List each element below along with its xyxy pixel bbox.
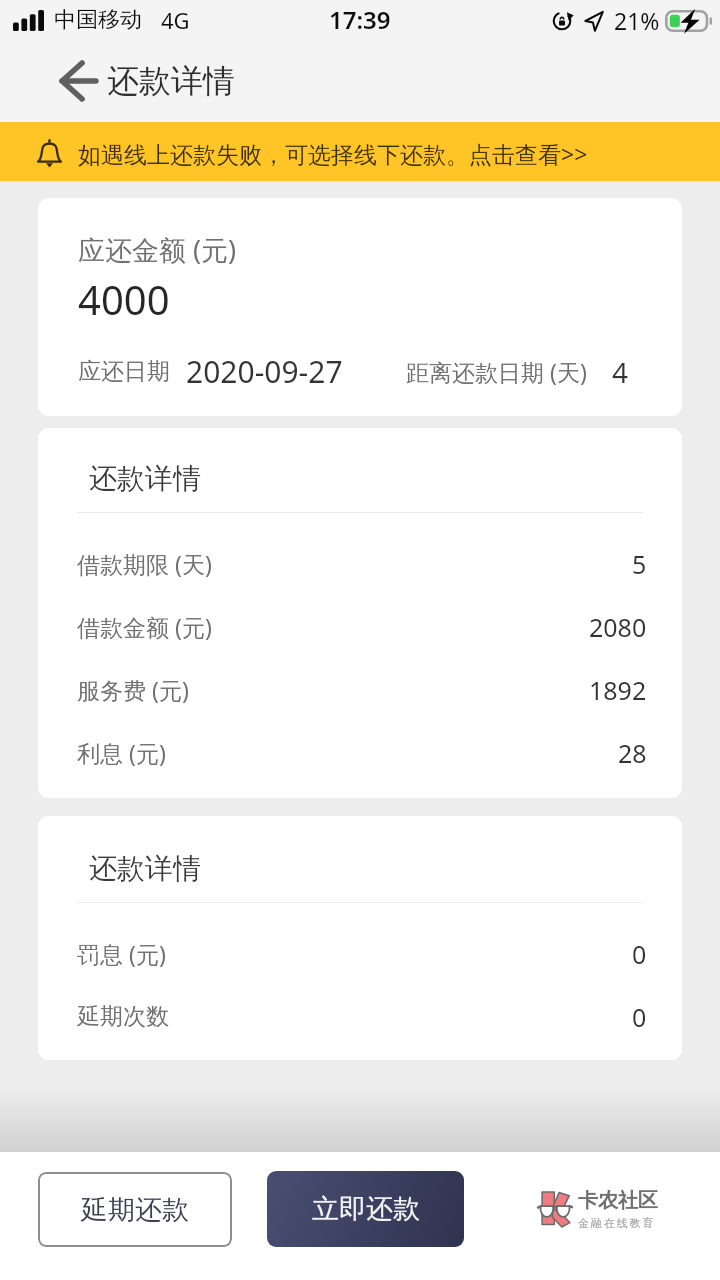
staticText: 如遇线上还款失败，可选择线下还款。点击查看>> bbox=[78, 138, 588, 169]
button[interactable]: 立即还款 bbox=[267, 1171, 464, 1247]
staticText: 延期还款 bbox=[81, 1193, 189, 1227]
staticText: 服务费 (元) bbox=[77, 674, 189, 705]
staticText: 0 bbox=[632, 937, 647, 971]
staticText: 4000 bbox=[78, 272, 170, 326]
staticText: 还款详情 bbox=[89, 461, 201, 496]
staticText: 借款金额 (元) bbox=[77, 611, 212, 642]
button[interactable]: 服务费 (元) bbox=[77, 658, 647, 721]
staticText: 罚息 (元) bbox=[77, 938, 166, 969]
staticText: 中国移动 bbox=[54, 6, 142, 34]
staticText: 距离还款日期 (天) bbox=[406, 356, 587, 387]
staticText: 应还日期 bbox=[78, 357, 170, 386]
button[interactable]: Back bbox=[56, 56, 101, 106]
staticText: 2020-09-27 bbox=[186, 351, 343, 392]
staticText: 延期次数 bbox=[77, 1002, 169, 1031]
staticText: 5 bbox=[632, 547, 647, 581]
staticText: 还款详情 bbox=[89, 851, 201, 886]
staticText: 17:39 bbox=[329, 3, 391, 36]
staticText: 2080 bbox=[589, 610, 647, 644]
button[interactable]: 延期还款 bbox=[38, 1172, 232, 1247]
staticText: 21% bbox=[614, 5, 660, 36]
button[interactable]: 延期次数 bbox=[77, 985, 647, 1048]
button[interactable]: 借款金额 (元) bbox=[77, 595, 647, 658]
button[interactable]: 利息 (元) bbox=[77, 721, 647, 784]
staticText: 还款详情 bbox=[107, 61, 235, 101]
staticText: 借款期限 (天) bbox=[77, 548, 212, 579]
staticText: 4G bbox=[161, 5, 190, 35]
button[interactable]: 借款期限 (天) bbox=[77, 532, 647, 595]
staticText: 4 bbox=[612, 353, 629, 391]
staticText: 卡农社区 bbox=[578, 1188, 658, 1213]
staticText: 0 bbox=[632, 1000, 647, 1034]
staticText: 1892 bbox=[589, 673, 647, 707]
staticText: 应还金额 (元) bbox=[78, 231, 237, 268]
staticText: 利息 (元) bbox=[77, 737, 166, 768]
button[interactable]: 罚息 (元) bbox=[77, 922, 647, 985]
staticText: 28 bbox=[618, 736, 647, 770]
button[interactable]: 如遇线上还款失败，可选择线下还款。点击查看>> bbox=[0, 122, 720, 181]
staticText: 立即还款 bbox=[312, 1192, 420, 1226]
staticText: 金融在线教育 bbox=[578, 1216, 656, 1230]
